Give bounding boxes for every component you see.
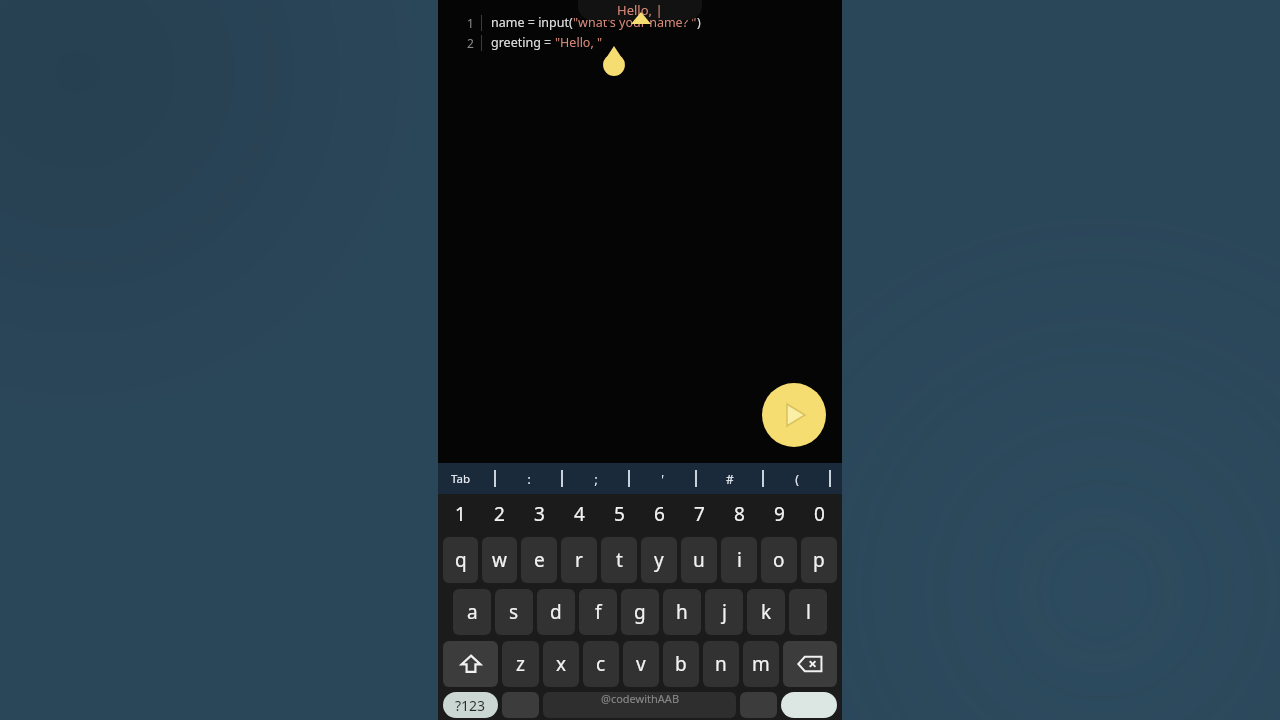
button[interactable]: b — [663, 641, 699, 687]
button[interactable]: 3 — [519, 494, 559, 534]
staticText: y — [654, 547, 664, 573]
button[interactable]: : — [507, 463, 550, 494]
staticText: h — [676, 599, 688, 625]
button[interactable]: q — [443, 537, 478, 583]
button[interactable]: Period — [740, 692, 777, 718]
button[interactable]: l — [789, 589, 827, 635]
button[interactable]: d — [537, 589, 575, 635]
button[interactable]: o — [761, 537, 797, 583]
staticText: i — [737, 547, 742, 573]
button[interactable]: 8 — [719, 494, 759, 534]
staticText: name = input( — [491, 14, 573, 31]
button[interactable]: g — [621, 589, 659, 635]
staticText: t — [616, 547, 623, 573]
button[interactable]: Backspace — [783, 641, 837, 687]
button[interactable]: h — [663, 589, 701, 635]
button[interactable]: ' — [641, 463, 684, 494]
staticText: "what's your name? " — [573, 14, 697, 31]
button[interactable]: s — [495, 589, 533, 635]
staticText: 1 — [455, 501, 466, 527]
button[interactable] — [684, 463, 708, 494]
button[interactable]: v — [623, 641, 659, 687]
staticText: w — [492, 547, 507, 573]
staticText: e — [534, 547, 545, 573]
button[interactable]: i — [721, 537, 757, 583]
button[interactable]: w — [482, 537, 517, 583]
button[interactable]: z — [502, 641, 539, 687]
staticText: 3 — [534, 501, 545, 527]
staticText: ( — [795, 471, 799, 487]
button[interactable]: p — [801, 537, 837, 583]
staticText: p — [813, 547, 825, 573]
button[interactable]: k — [747, 589, 785, 635]
staticText: m — [752, 651, 770, 677]
staticText: ' — [661, 471, 664, 487]
button[interactable]: Shift — [443, 641, 498, 687]
button[interactable]: n — [703, 641, 739, 687]
button[interactable]: r — [561, 537, 597, 583]
staticText: d — [550, 599, 562, 625]
staticText: 2 — [494, 501, 505, 527]
staticText: k — [761, 599, 772, 625]
staticText: g — [634, 599, 646, 625]
staticText: ) — [697, 14, 701, 31]
button[interactable]: y — [641, 537, 677, 583]
button[interactable]: x — [543, 641, 579, 687]
other: Text selection handle — [601, 46, 627, 76]
button[interactable]: 6 — [639, 494, 679, 534]
button[interactable]: m — [743, 641, 779, 687]
button[interactable]: t — [601, 537, 637, 583]
button[interactable]: # — [708, 463, 751, 494]
button[interactable]: 1 — [441, 494, 480, 534]
button[interactable]: e — [521, 537, 557, 583]
staticText: f — [595, 599, 602, 625]
button[interactable]: f — [579, 589, 617, 635]
button[interactable]: c — [583, 641, 619, 687]
staticText: : — [527, 471, 531, 487]
staticText: 8 — [734, 501, 745, 527]
button[interactable]: 0 — [799, 494, 839, 534]
button[interactable] — [617, 463, 641, 494]
staticText: Tab — [451, 471, 470, 487]
staticText: b — [675, 651, 687, 677]
button[interactable]: Hello, | — [578, 0, 702, 20]
button[interactable]: 7 — [679, 494, 719, 534]
button[interactable]: Tab — [438, 463, 482, 494]
button[interactable] — [482, 463, 507, 494]
button[interactable] — [818, 463, 842, 494]
staticText: "Hello, " — [555, 34, 603, 51]
staticText: 2 — [467, 35, 474, 51]
button[interactable]: Space — [543, 692, 736, 718]
button[interactable]: Run — [762, 383, 826, 447]
staticText: o — [773, 547, 785, 573]
staticText: 7 — [694, 501, 705, 527]
button[interactable]: ?123 — [443, 692, 498, 718]
staticText: 0 — [814, 501, 825, 527]
button[interactable]: Enter — [781, 692, 837, 718]
button[interactable]: u — [681, 537, 717, 583]
button[interactable]: 9 — [759, 494, 799, 534]
button[interactable]: ( — [775, 463, 818, 494]
staticText: @codewithAAB — [601, 691, 680, 706]
staticText: # — [726, 471, 734, 487]
staticText: a — [467, 599, 478, 625]
button[interactable]: 4 — [559, 494, 599, 534]
button[interactable]: a — [453, 589, 491, 635]
button[interactable]: 5 — [599, 494, 639, 534]
button[interactable]: j — [705, 589, 743, 635]
staticText: l — [806, 599, 811, 625]
button[interactable]: Emoji — [502, 692, 539, 718]
staticText: 1 — [467, 15, 474, 31]
staticText: r — [575, 547, 583, 573]
staticText: q — [455, 547, 467, 573]
staticText: s — [509, 599, 519, 625]
staticText: Hello, | — [617, 1, 663, 19]
button[interactable]: ; — [574, 463, 617, 494]
staticText: 6 — [654, 501, 665, 527]
button[interactable]: 2 — [480, 494, 519, 534]
button[interactable] — [751, 463, 775, 494]
staticText: v — [636, 651, 646, 677]
staticText: z — [516, 651, 525, 677]
button[interactable] — [550, 463, 574, 494]
staticText: j — [722, 599, 727, 625]
